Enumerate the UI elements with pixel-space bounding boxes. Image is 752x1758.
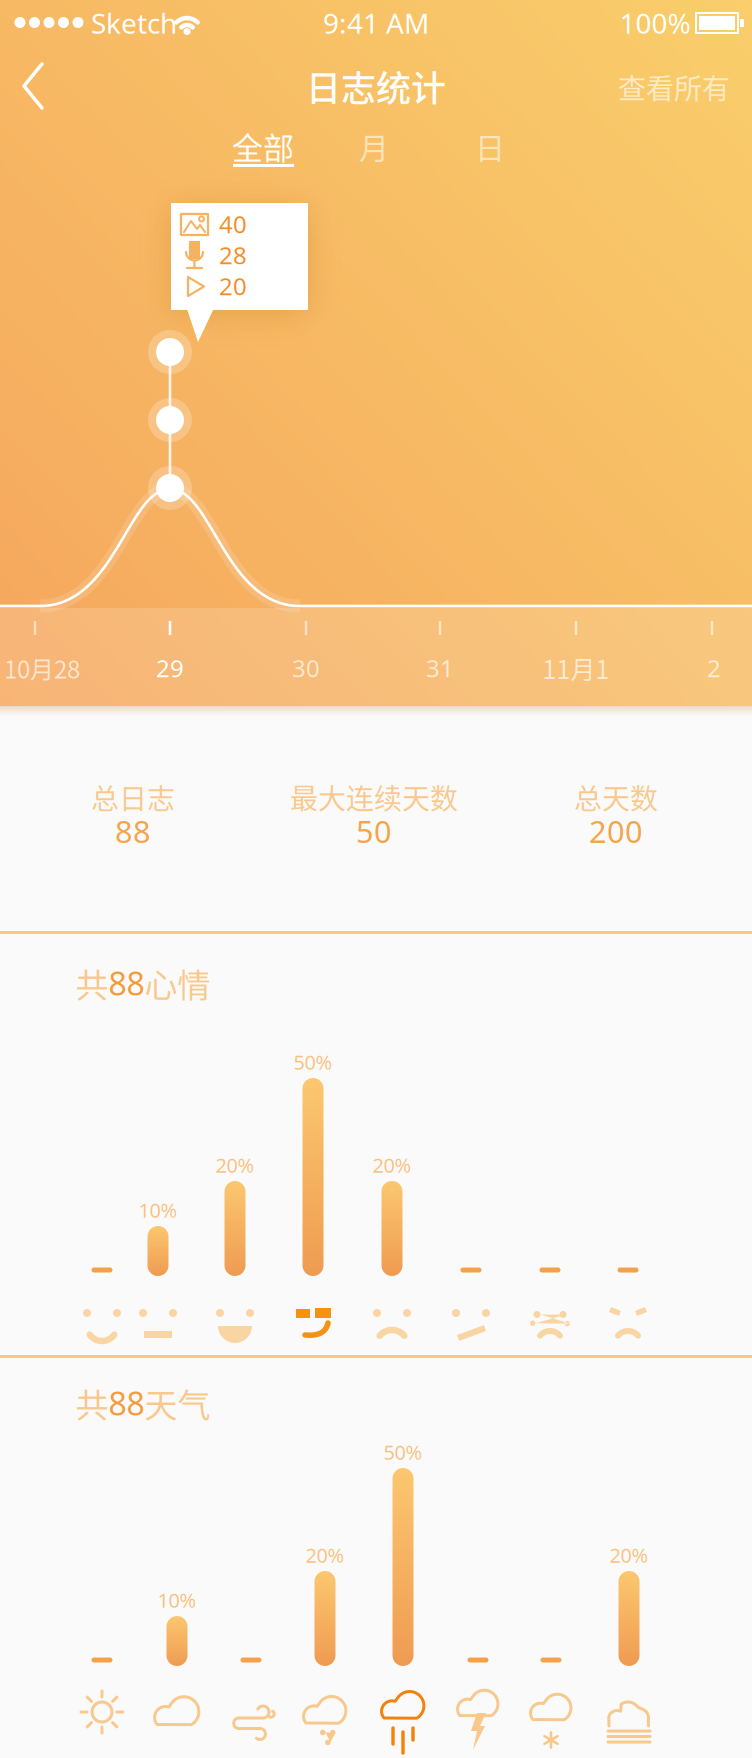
staticText: 10% — [157, 1587, 196, 1613]
staticText: 100% — [619, 4, 690, 42]
staticText: 30 — [292, 652, 320, 684]
staticText: 20% — [372, 1152, 411, 1178]
staticText: 9:41 AM — [323, 4, 429, 42]
staticText: 40 — [219, 208, 247, 240]
staticText: 10% — [138, 1197, 177, 1223]
staticText: 查看所有 — [618, 67, 730, 107]
staticText: 28 — [219, 239, 247, 271]
staticText: 88 — [108, 962, 144, 1004]
staticText: 88 — [115, 811, 151, 851]
staticText: 20% — [305, 1542, 344, 1568]
staticText: 总天数 — [574, 777, 658, 817]
staticText: 50 — [356, 811, 392, 851]
staticText: 月 — [359, 124, 389, 168]
staticText: 20% — [215, 1152, 254, 1178]
staticText: 50% — [293, 1049, 332, 1075]
staticText: 10月28 — [4, 651, 80, 685]
staticText: 50% — [383, 1439, 422, 1465]
staticText: 29 — [156, 652, 184, 684]
staticText: 天气 — [144, 1379, 210, 1427]
staticText: 全部 — [232, 124, 294, 168]
staticText: 最大连续天数 — [290, 777, 458, 817]
staticText: 总日志 — [91, 777, 175, 817]
staticText: 20% — [609, 1542, 648, 1568]
staticText: 心情 — [144, 959, 210, 1007]
staticText: 共 — [75, 959, 108, 1007]
staticText: 11月1 — [542, 650, 609, 686]
staticText: 共 — [75, 1379, 108, 1427]
staticText: 日志统计 — [306, 61, 446, 111]
staticText: Sketch — [91, 4, 177, 42]
staticText: 88 — [108, 1382, 144, 1424]
staticText: 日 — [475, 124, 505, 168]
staticText: 200 — [589, 811, 643, 851]
staticText: 20 — [219, 270, 247, 302]
staticText: 31 — [426, 652, 454, 684]
staticText: 2 — [707, 652, 721, 684]
